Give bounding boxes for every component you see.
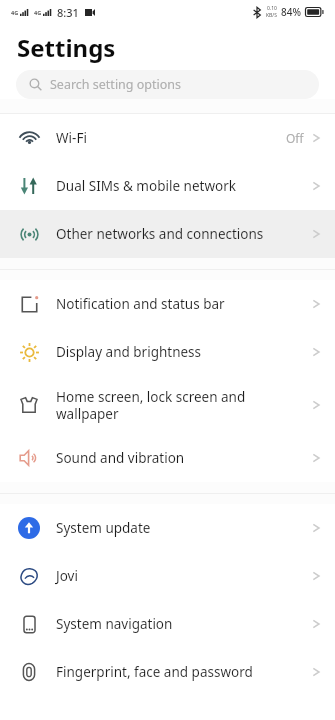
staticText: 84% [281, 5, 301, 19]
staticText: Dual SIMs & mobile network [56, 177, 236, 195]
button[interactable]: System update [0, 504, 335, 552]
button[interactable]: Other networks and connections [0, 210, 335, 258]
staticText: System navigation [56, 615, 173, 633]
button[interactable]: Home screen, lock screen and wallpaper [0, 376, 335, 434]
button[interactable]: Fingerprint, face and password [0, 648, 335, 696]
staticText: 4G [11, 9, 19, 16]
staticText: 8:31 [57, 5, 79, 20]
button[interactable]: Wi-Fi [0, 114, 335, 162]
button[interactable]: Jovi [0, 552, 335, 600]
staticText: Notification and status bar [56, 295, 225, 313]
button[interactable]: Notification and status bar [0, 280, 335, 328]
staticText: Off [286, 130, 304, 146]
staticText: KB/S [266, 12, 277, 19]
staticText: Other networks and connections [56, 225, 264, 243]
button[interactable]: System navigation [0, 600, 335, 648]
staticText: System update [56, 519, 151, 537]
staticText: Settings [17, 31, 116, 64]
staticText: Jovi [56, 567, 78, 585]
staticText: Wi-Fi [56, 129, 87, 147]
staticText: Sound and vibration [56, 449, 185, 467]
staticText: Home screen, lock screen and wallpaper [56, 388, 306, 423]
staticText: Display and brightness [56, 343, 202, 361]
button[interactable]: Sound and vibration [0, 434, 335, 482]
staticText: 4G [34, 9, 42, 16]
button[interactable]: Display and brightness [0, 328, 335, 376]
button[interactable]: Search setting options [16, 70, 319, 99]
staticText: Search setting options [50, 76, 182, 93]
button[interactable]: Dual SIMs & mobile network [0, 162, 335, 210]
staticText: 0.10 [267, 5, 277, 12]
staticText: Fingerprint, face and password [56, 663, 253, 681]
